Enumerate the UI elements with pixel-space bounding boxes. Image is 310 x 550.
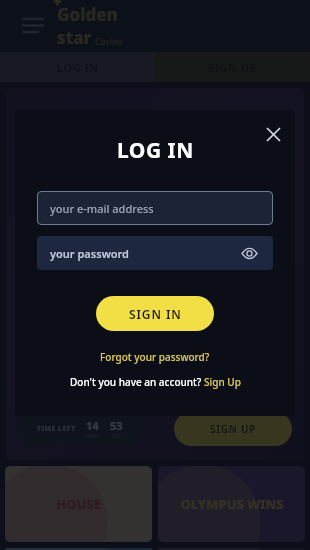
button[interactable]: Close [259, 120, 287, 148]
staticText: 53 [110, 418, 123, 433]
staticText: Golden [57, 3, 118, 26]
staticText: LOG IN [57, 60, 99, 75]
button[interactable]: Forgot your password? [98, 348, 212, 366]
staticText: Forgot your password? [100, 350, 210, 364]
staticText: TIME LEFT [37, 424, 76, 434]
button[interactable]: OLYMPUS WINS [158, 466, 305, 542]
staticText: SIGN IN [129, 306, 182, 322]
button[interactable]: SIGN UP [174, 412, 292, 446]
staticText: SIGN UP [210, 422, 257, 436]
staticText: your password [50, 246, 129, 261]
staticText: MIN [87, 433, 98, 440]
button[interactable] [158, 548, 305, 550]
staticText: 14 [86, 418, 99, 433]
staticText: your e-mail address [50, 201, 154, 216]
button[interactable] [5, 548, 152, 550]
button[interactable]: HOUSE [5, 466, 152, 542]
staticText: Casino [95, 35, 123, 47]
button[interactable]: Sign Up [204, 375, 241, 389]
staticText: Don't you have an account? [70, 375, 204, 389]
staticText: OLYMPUS WINS [180, 495, 284, 513]
staticText: Sign Up [204, 375, 241, 389]
staticText: star [57, 26, 92, 49]
button[interactable]: your e-mail address [37, 191, 273, 225]
button[interactable]: Show password [238, 242, 260, 264]
staticText: HOUSE [56, 495, 101, 513]
staticText: SIGN UP [208, 60, 257, 75]
staticText: SEC [112, 433, 121, 440]
staticText: LOG IN [117, 136, 194, 165]
button[interactable]: SIGN IN [96, 296, 214, 331]
button[interactable]: Menu [18, 11, 48, 41]
button[interactable]: your password [37, 236, 273, 270]
